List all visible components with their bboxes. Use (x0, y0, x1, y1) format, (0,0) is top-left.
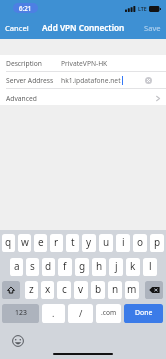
button[interactable]: b (91, 281, 105, 299)
staticText: hk1.ipdatafone.net (61, 76, 121, 85)
staticText: Advanced (6, 94, 37, 103)
button[interactable]: j (109, 258, 123, 276)
staticText: Add VPN Connection (42, 22, 125, 33)
staticText: z (29, 282, 34, 296)
staticText: w (21, 235, 29, 249)
staticText: d (45, 259, 52, 273)
button[interactable]: / (68, 304, 93, 323)
button[interactable]: i (116, 234, 130, 252)
staticText: .com (101, 308, 117, 317)
staticText: Save (144, 23, 161, 33)
button[interactable]: z (25, 281, 38, 299)
button[interactable]: t (66, 234, 79, 252)
staticText: q (5, 235, 12, 249)
button[interactable]: h (92, 258, 106, 276)
button[interactable]: x (41, 281, 54, 299)
staticText: k (130, 259, 136, 273)
staticText: 6:21 (19, 4, 32, 12)
staticText: t (71, 235, 75, 249)
staticText: y (86, 235, 92, 249)
staticText: i (122, 235, 125, 249)
button[interactable]: r (50, 234, 63, 252)
button[interactable]: f (58, 258, 72, 276)
staticText: x (45, 282, 51, 296)
staticText: j (115, 259, 118, 273)
button[interactable]: a (10, 258, 23, 276)
button[interactable]: n (108, 281, 122, 299)
button[interactable]: Cancel (0, 18, 34, 38)
staticText: a (14, 259, 20, 273)
button[interactable]: o (133, 234, 147, 252)
staticText: Server Address (6, 76, 54, 85)
button[interactable]: v (74, 281, 88, 299)
staticText: b (95, 282, 102, 296)
staticText: m (127, 282, 137, 296)
staticText: p (154, 235, 161, 249)
button[interactable]: Shift (2, 281, 20, 299)
staticText: l (149, 259, 152, 273)
staticText: o (137, 235, 144, 249)
button[interactable]: k (126, 258, 140, 276)
button[interactable]: Advanced (0, 89, 166, 107)
staticText: . (52, 307, 55, 319)
staticText: g (79, 259, 86, 273)
button[interactable]: q (2, 234, 15, 252)
staticText: c (62, 282, 67, 296)
button[interactable]: c (57, 281, 71, 299)
button[interactable]: u (99, 234, 113, 252)
button[interactable]: 123 (2, 304, 39, 323)
staticText: f (63, 259, 67, 273)
button[interactable]: Description (0, 55, 166, 71)
button[interactable]: m (125, 281, 139, 299)
staticText: LTE (138, 5, 147, 12)
button[interactable]: Server Address (0, 72, 166, 88)
button[interactable]: .com (96, 304, 121, 323)
button[interactable]: Done (124, 304, 163, 323)
staticText: 123 (15, 308, 27, 317)
staticText: s (30, 259, 35, 273)
staticText: Done (135, 308, 153, 317)
staticText: / (79, 307, 83, 319)
staticText: Description (6, 59, 42, 68)
button[interactable]: g (75, 258, 89, 276)
button[interactable]: p (150, 234, 164, 252)
staticText: Cancel (5, 23, 29, 33)
staticText: r (54, 235, 59, 249)
button[interactable]: w (18, 234, 31, 252)
staticText: e (38, 235, 44, 249)
staticText: h (96, 259, 103, 273)
button[interactable]: Save (139, 18, 166, 38)
staticText: n (112, 282, 119, 296)
button[interactable]: Backspace (145, 281, 163, 299)
button[interactable]: l (143, 258, 157, 276)
button[interactable]: y (82, 234, 96, 252)
button[interactable]: . (42, 304, 65, 323)
button[interactable]: Emoji (11, 334, 25, 348)
staticText: u (103, 235, 110, 249)
button[interactable]: d (42, 258, 55, 276)
button[interactable]: s (26, 258, 39, 276)
button[interactable]: e (34, 234, 47, 252)
staticText: PrivateVPN-HK (61, 59, 108, 68)
staticText: v (78, 282, 84, 296)
